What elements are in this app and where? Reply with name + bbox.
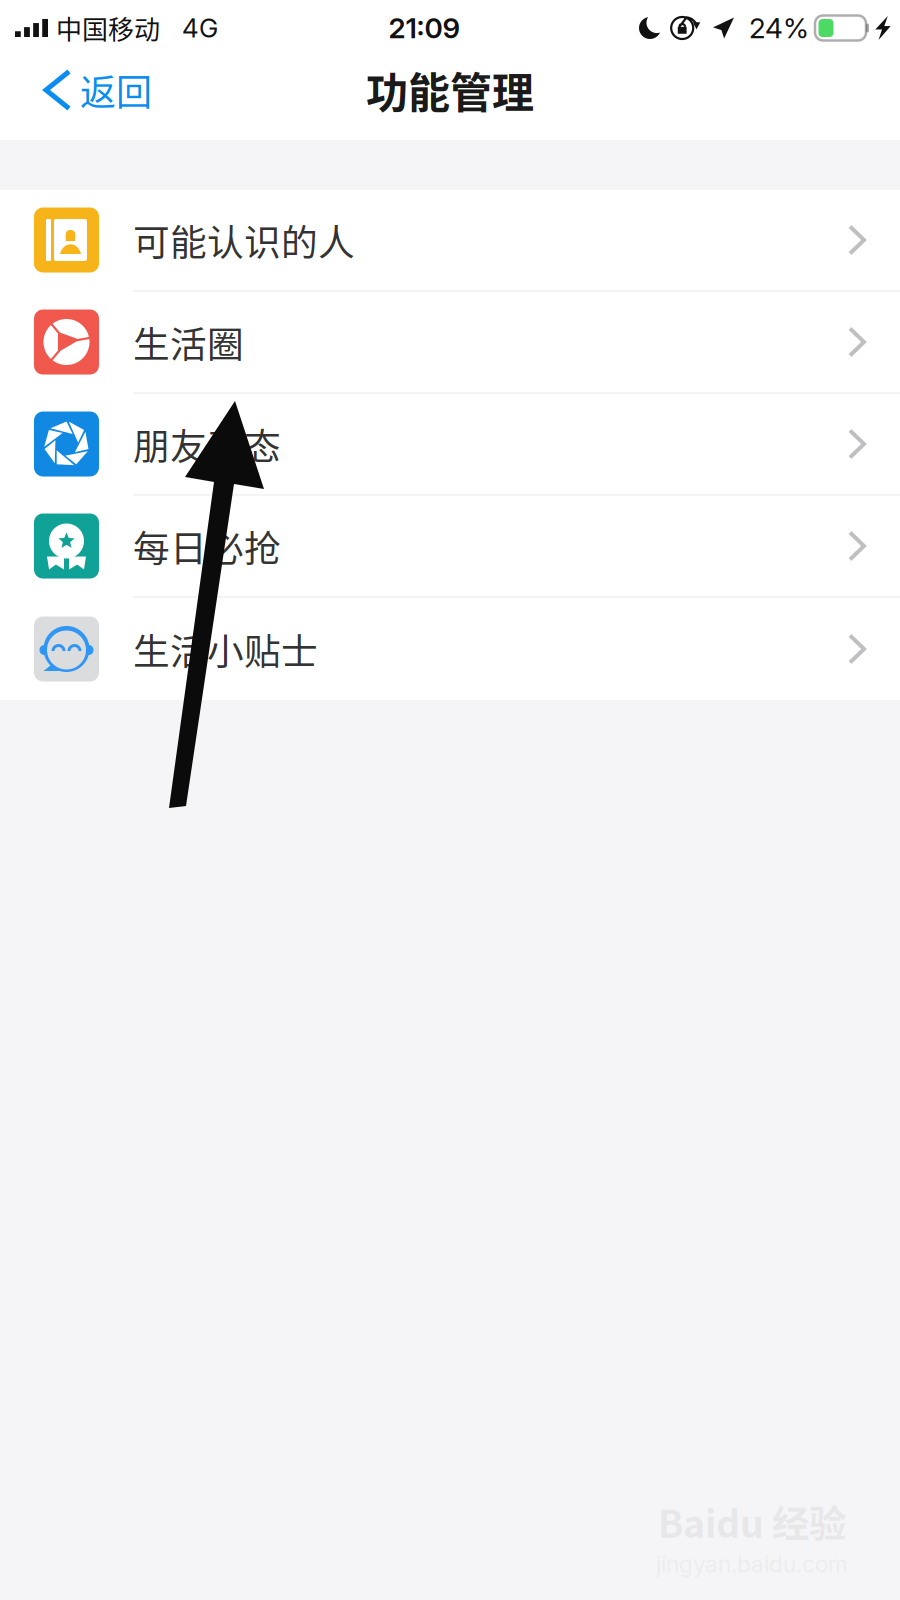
staticText: 21:09 (388, 11, 460, 45)
staticText: 生活小贴士 (133, 622, 318, 676)
button[interactable]: 朋友动态 (0, 394, 900, 496)
button[interactable]: 生活圈 (0, 292, 900, 394)
staticText: 可能认识的人 (133, 213, 355, 267)
staticText: 每日必抢 (133, 519, 281, 573)
staticText: 中国移动 (56, 9, 160, 47)
button[interactable]: 返回 (0, 56, 168, 140)
button[interactable]: 生活小贴士 (0, 598, 900, 700)
staticText: 朋友动态 (133, 417, 281, 471)
staticText: 24% (749, 11, 809, 45)
button[interactable]: 可能认识的人 (0, 190, 900, 292)
staticText: 生活圈 (133, 315, 244, 369)
staticText: 返回 (80, 64, 152, 116)
staticText: 功能管理 (366, 60, 534, 120)
staticText: 4G (182, 12, 218, 44)
staticText: jingyan.baidu.com (656, 1551, 848, 1578)
staticText: Baidu 经验 (658, 1494, 846, 1549)
button[interactable]: 每日必抢 (0, 496, 900, 598)
